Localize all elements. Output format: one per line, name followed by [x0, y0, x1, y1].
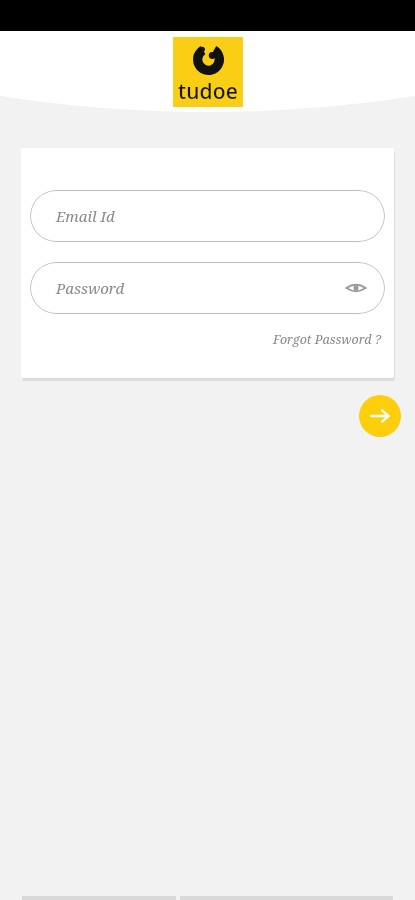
staticText: Password: [56, 278, 125, 298]
button[interactable]: Show password: [341, 273, 371, 303]
staticText: Forgot Password ?: [273, 331, 381, 348]
button[interactable]: Continue: [359, 395, 401, 437]
staticText: tudoe: [178, 77, 239, 106]
button[interactable]: tudoe logo: [173, 37, 243, 107]
button[interactable]: Forgot Password ?: [269, 328, 385, 351]
button[interactable]: Email Id: [30, 190, 385, 242]
button[interactable]: Password: [30, 262, 385, 314]
staticText: Email Id: [56, 206, 115, 226]
